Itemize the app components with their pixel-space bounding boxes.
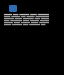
button[interactable]: App logo [9,5,17,12]
